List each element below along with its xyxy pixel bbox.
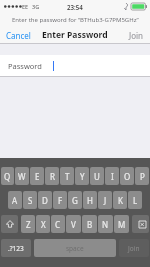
- button[interactable]: M: [114, 215, 129, 233]
- staticText: D: [42, 195, 48, 206]
- button[interactable]: P: [135, 167, 149, 185]
- button[interactable]: T: [60, 167, 74, 185]
- staticText: N: [102, 219, 109, 230]
- staticText: P: [140, 171, 145, 182]
- button[interactable]: W: [15, 167, 29, 185]
- button[interactable]: X: [36, 215, 50, 233]
- button[interactable]: I: [105, 167, 119, 185]
- button[interactable]: S: [23, 191, 37, 209]
- button[interactable]: Cancel: [0, 27, 37, 43]
- button[interactable]: Shift: [1, 215, 18, 233]
- staticText: O: [124, 171, 131, 182]
- button[interactable]: Z: [21, 215, 35, 233]
- button[interactable]: J: [98, 191, 112, 209]
- staticText: U: [94, 171, 100, 182]
- staticText: E: [35, 171, 40, 182]
- staticText: T: [65, 171, 70, 182]
- staticText: V: [71, 219, 76, 230]
- button[interactable]: U: [90, 167, 104, 185]
- staticText: R: [50, 171, 55, 182]
- staticText: F: [58, 195, 63, 206]
- button[interactable]: space: [34, 239, 116, 257]
- staticText: space: [66, 244, 84, 253]
- staticText: Z: [26, 219, 31, 230]
- button[interactable]: D: [38, 191, 52, 209]
- staticText: EE: [22, 3, 29, 10]
- button[interactable]: V: [66, 215, 81, 233]
- staticText: A: [12, 195, 18, 206]
- button[interactable]: C: [51, 215, 65, 233]
- button[interactable]: A: [8, 191, 22, 209]
- staticText: .?123: [8, 244, 24, 253]
- button[interactable]: N: [98, 215, 113, 233]
- button[interactable]: K: [113, 191, 127, 209]
- button[interactable]: Y: [75, 167, 89, 185]
- button[interactable]: E: [30, 167, 44, 185]
- staticText: Y: [80, 171, 85, 182]
- button[interactable]: R: [45, 167, 59, 185]
- staticText: S: [28, 195, 33, 206]
- button[interactable]: Password: [0, 55, 150, 76]
- staticText: Enter the password for “BTHub3-G7PM5GHz”: [12, 16, 139, 24]
- button[interactable]: .?123: [1, 239, 31, 257]
- staticText: Enter Password: [42, 29, 108, 41]
- staticText: C: [55, 219, 61, 230]
- button[interactable]: Join: [119, 239, 149, 257]
- button[interactable]: H: [83, 191, 97, 209]
- staticText: Join: [129, 30, 144, 41]
- staticText: B: [87, 219, 93, 230]
- staticText: J: [104, 195, 107, 206]
- staticText: L: [133, 195, 138, 206]
- staticText: K: [118, 195, 123, 206]
- staticText: 23:54: [67, 3, 83, 11]
- staticText: Join: [128, 244, 140, 253]
- staticText: G: [72, 195, 78, 206]
- button[interactable]: Backspace: [132, 215, 149, 233]
- staticText: H: [87, 195, 93, 206]
- staticText: 3G: [32, 3, 40, 10]
- staticText: W: [18, 171, 26, 182]
- button[interactable]: Q: [1, 167, 14, 185]
- button[interactable]: L: [128, 191, 142, 209]
- staticText: M: [118, 219, 126, 230]
- button[interactable]: B: [82, 215, 97, 233]
- button[interactable]: Join: [123, 27, 150, 43]
- staticText: Cancel: [6, 30, 31, 41]
- button[interactable]: F: [53, 191, 67, 209]
- staticText: I: [111, 171, 114, 182]
- staticText: X: [41, 219, 46, 230]
- staticText: Password: [8, 61, 42, 71]
- button[interactable]: G: [68, 191, 82, 209]
- button[interactable]: O: [120, 167, 134, 185]
- staticText: Q: [4, 171, 11, 182]
